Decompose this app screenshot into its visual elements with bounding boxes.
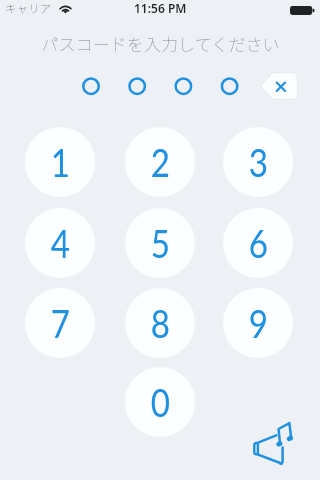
button[interactable]: 5 (125, 208, 195, 278)
button[interactable]: 6 (223, 208, 293, 278)
staticText: 1 (51, 139, 70, 186)
button[interactable]: 8 (125, 288, 195, 358)
staticText: 6 (249, 220, 268, 267)
button[interactable]: 7 (25, 288, 95, 358)
staticText: 2 (151, 139, 170, 186)
staticText: パスコードを入力してください (41, 31, 280, 55)
button[interactable]: 1 (25, 127, 95, 197)
staticText: 0 (151, 379, 170, 426)
button[interactable]: 2 (125, 127, 195, 197)
staticText: 7 (51, 300, 70, 347)
button[interactable]: 3 (223, 127, 293, 197)
button[interactable]: 4 (25, 208, 95, 278)
button[interactable]: 9 (223, 288, 293, 358)
staticText: キャリア (5, 0, 51, 17)
button[interactable]: 0 (125, 367, 195, 437)
button[interactable]: Announcements (250, 418, 302, 470)
staticText: 9 (249, 300, 268, 347)
staticText: 8 (151, 300, 170, 347)
staticText: 11:56 PM (134, 0, 187, 16)
staticText: 5 (151, 220, 170, 267)
staticText: 3 (249, 139, 268, 186)
button[interactable]: Delete (260, 72, 298, 100)
staticText: 4 (51, 220, 70, 267)
